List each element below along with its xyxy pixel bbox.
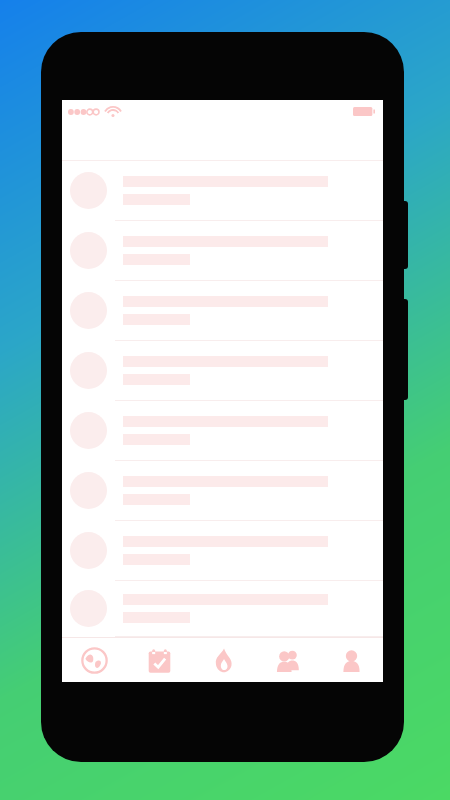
button[interactable]: [62, 341, 383, 401]
button[interactable]: [62, 521, 383, 581]
button[interactable]: [62, 401, 383, 461]
button[interactable]: [62, 281, 383, 341]
button[interactable]: Explore: [62, 638, 127, 682]
button[interactable]: [62, 461, 383, 521]
button[interactable]: [62, 161, 383, 221]
button[interactable]: Friends: [255, 638, 319, 682]
button[interactable]: Profile: [319, 638, 383, 682]
button[interactable]: Trending: [191, 638, 255, 682]
button[interactable]: Events: [127, 638, 191, 682]
button[interactable]: [62, 221, 383, 281]
button[interactable]: [62, 581, 383, 637]
